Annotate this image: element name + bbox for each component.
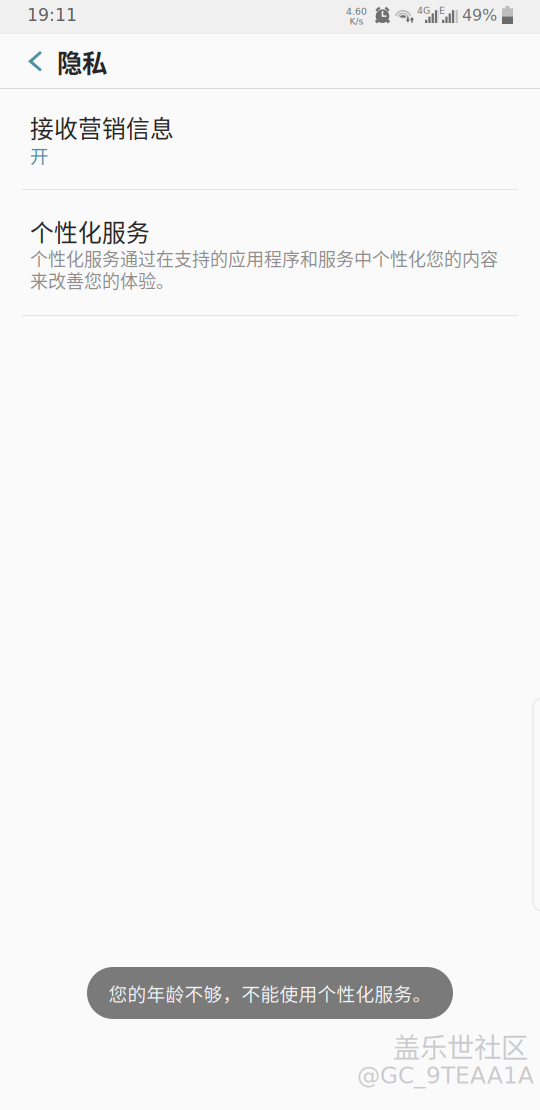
staticText: 4.60 [346, 6, 367, 17]
staticText: 19:11 [27, 5, 77, 25]
staticText: E [439, 5, 445, 16]
button[interactable]: 接收营销信息 [0, 89, 540, 189]
staticText: 个性化服务 [30, 214, 150, 248]
staticText: 您的年龄不够，不能使用个性化服务。 [108, 979, 431, 1006]
staticText: @GC_9TEAA1A [357, 1062, 534, 1089]
staticText: 接收营销信息 [30, 110, 174, 144]
staticText: 49% [462, 6, 497, 25]
button[interactable]: Back [13, 34, 63, 88]
staticText: K/s [349, 16, 363, 27]
staticText: 盖乐世社区 [393, 1026, 528, 1066]
staticText: 隐私 [57, 43, 107, 80]
staticText: 开 [30, 142, 48, 169]
staticText: 来改善您的体验。 [30, 267, 174, 293]
staticText: 个性化服务通过在支持的应用程序和服务中个性化您的内容 [30, 245, 498, 271]
staticText: 4G [417, 5, 430, 16]
